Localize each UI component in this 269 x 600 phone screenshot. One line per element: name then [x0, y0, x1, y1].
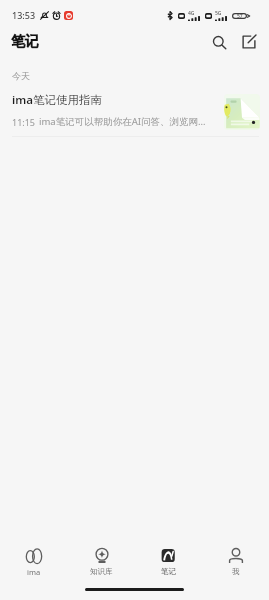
- button[interactable]: 知识库: [68, 544, 135, 576]
- staticText: 笔记: [161, 567, 176, 576]
- staticText: 笔记: [11, 33, 39, 51]
- staticText: ima笔记可以帮助你在AI问答、浏览网…: [39, 115, 206, 128]
- staticText: 今天: [12, 70, 30, 81]
- staticText: 57: [237, 13, 243, 19]
- button[interactable]: 我: [202, 544, 269, 576]
- staticText: 11:15: [12, 116, 36, 128]
- button[interactable]: ima: [0, 544, 68, 577]
- button[interactable]: 笔记: [135, 544, 202, 576]
- staticText: 13:53: [12, 9, 36, 21]
- button[interactable]: New note: [236, 29, 262, 55]
- staticText: 知识库: [90, 567, 113, 576]
- button[interactable]: ima笔记使用指南: [0, 88, 269, 137]
- staticText: ima笔记使用指南: [12, 92, 103, 108]
- button[interactable]: Search: [206, 29, 232, 55]
- staticText: 5G: [215, 10, 222, 17]
- staticText: 4G: [188, 10, 195, 17]
- staticText: 我: [232, 567, 240, 576]
- staticText: ima: [27, 567, 41, 577]
